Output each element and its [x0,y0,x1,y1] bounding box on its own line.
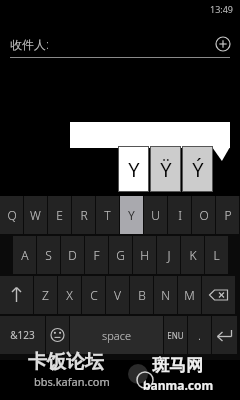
staticText: C [90,287,98,303]
button[interactable]: J [157,236,180,274]
button[interactable]: N [154,276,177,314]
staticText: S [45,247,52,263]
button[interactable]: L [205,236,228,274]
button[interactable]: D [61,236,84,274]
staticText: space [102,328,131,343]
button[interactable]: S [37,236,60,274]
staticText: bbs.kafan.com [34,374,110,389]
button[interactable]: Q [0,196,23,234]
staticText: A [21,247,29,263]
button[interactable]: R [72,196,95,234]
staticText: G [116,247,125,263]
staticText: 收件人: [10,36,49,52]
button[interactable]: Add recipient [214,35,232,53]
button[interactable]: Ÿ [151,147,180,191]
staticText: F [93,247,100,263]
staticText: Ý [192,156,204,183]
staticText: P [224,207,232,223]
staticText: L [213,247,220,263]
staticText: Q [7,207,17,223]
button[interactable]: U [144,196,167,234]
staticText: B [138,287,146,303]
button[interactable]: Ý [183,147,212,191]
staticText: V [114,287,121,303]
button[interactable]: I [168,196,191,234]
staticText: 斑马网 [152,355,203,376]
staticText: . [198,327,201,343]
button[interactable]: Y [119,147,148,191]
staticText: I [178,207,182,223]
button[interactable]: K [181,236,204,274]
staticText: Y [128,207,135,223]
staticText: N [161,287,170,303]
staticText: M [184,287,195,303]
button[interactable]: Emoji [46,316,69,354]
staticText: R [80,207,88,223]
button[interactable]: space [70,316,163,354]
button[interactable]: Backspace [202,276,235,314]
button[interactable]: B [130,276,153,314]
staticText: Ÿ [160,156,172,183]
staticText: &123 [10,328,35,342]
staticText: K [189,247,197,263]
staticText: J [167,247,171,263]
button[interactable]: C [82,276,105,314]
button[interactable]: O [192,196,215,234]
button[interactable]: Z [34,276,57,314]
staticText: W [30,207,41,223]
button[interactable]: H [133,236,156,274]
staticText: ENU [167,330,184,341]
button[interactable]: Y [120,196,143,234]
staticText: X [66,287,73,303]
button[interactable]: T [96,196,119,234]
staticText: U [151,207,160,223]
staticText: 13:49 [210,3,234,15]
staticText: banma.com [143,377,214,393]
staticText: H [140,247,149,263]
staticText: Y [128,156,140,183]
button[interactable]: G [109,236,132,274]
staticText: E [56,207,63,223]
button[interactable]: Shift [0,276,33,314]
button[interactable]: A [13,236,36,274]
staticText: D [68,247,77,263]
staticText: O [199,207,209,223]
button[interactable]: V [106,276,129,314]
button[interactable]: E [48,196,71,234]
staticText: 卡饭论坛 [28,350,104,374]
button[interactable]: &123 [0,316,45,354]
button[interactable]: M [178,276,201,314]
button[interactable]: P [216,196,239,234]
button[interactable]: W [24,196,47,234]
button[interactable]: ENU [164,316,187,354]
button[interactable]: . [188,316,211,354]
button[interactable]: X [58,276,81,314]
button[interactable]: F [85,236,108,274]
button[interactable]: Enter [212,316,237,354]
staticText: Z [42,287,49,303]
staticText: T [104,207,111,223]
